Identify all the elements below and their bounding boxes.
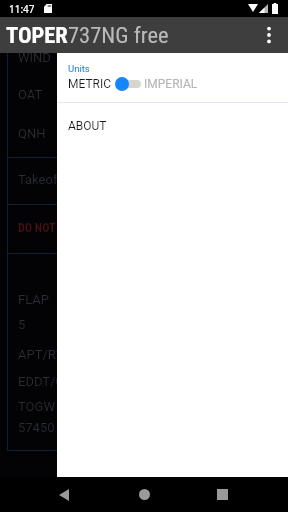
button[interactable]: ABOUT <box>57 103 288 146</box>
staticText: WIND <box>18 50 51 65</box>
staticText: 5 <box>18 317 26 332</box>
button[interactable]: Recent apps <box>202 477 242 512</box>
button[interactable]: Units <box>57 53 288 102</box>
staticText: TOGW <box>18 399 55 414</box>
button[interactable]: More options <box>250 17 288 53</box>
staticText: DO NOT <box>18 221 56 235</box>
staticText: 11:47 <box>9 2 35 16</box>
staticText: FLAP <box>18 292 49 307</box>
button[interactable]: Back <box>44 477 84 512</box>
staticText: 737NG free <box>68 22 169 48</box>
staticText: Units <box>68 63 90 74</box>
staticText: Takeoff <box>18 172 62 187</box>
staticText: APT/RWY <box>18 347 76 362</box>
staticText: METRIC <box>68 77 112 91</box>
staticText: OAT <box>18 87 43 102</box>
staticText: 57450 <box>18 420 55 435</box>
staticText: IMPERIAL <box>144 77 198 91</box>
staticText: EDDT/08L <box>18 374 78 389</box>
staticText: TOPER <box>6 22 68 48</box>
staticText: ABOUT <box>68 119 107 133</box>
button[interactable]: Home <box>124 477 164 512</box>
staticText: QNH <box>18 126 46 141</box>
